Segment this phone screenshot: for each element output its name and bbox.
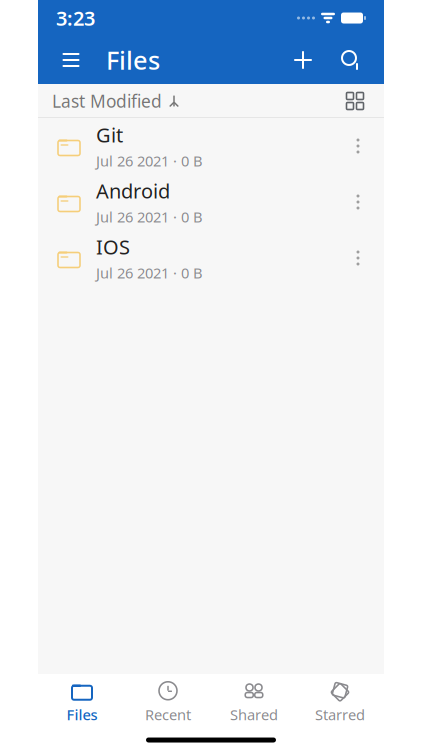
button[interactable]: Shared (211, 679, 297, 725)
staticText: Files (66, 705, 97, 724)
staticText: 3:23 (56, 5, 95, 31)
button[interactable]: Starred (297, 679, 383, 725)
button[interactable]: Git (38, 118, 384, 174)
staticText: IOS (96, 233, 130, 260)
button[interactable]: Grid view (340, 86, 370, 116)
staticText: Recent (145, 705, 191, 724)
staticText: Android (96, 177, 170, 204)
staticText: Jul 26 2021 · 0 B (96, 263, 203, 282)
button[interactable]: Last Modified (52, 81, 180, 120)
staticText: Git (96, 121, 123, 148)
button[interactable]: Recent (125, 679, 211, 725)
staticText: Jul 26 2021 · 0 B (96, 207, 203, 226)
button[interactable]: Search (332, 41, 370, 79)
button[interactable]: Files (39, 679, 125, 725)
button[interactable]: Add (284, 41, 322, 79)
staticText: Last Modified (52, 89, 162, 112)
button[interactable]: IOS (38, 230, 384, 286)
staticText: Files (106, 43, 160, 77)
button[interactable]: Android (38, 174, 384, 230)
staticText: Starred (315, 705, 365, 724)
staticText: Shared (230, 705, 278, 724)
button[interactable]: Menu (52, 41, 90, 79)
staticText: Jul 26 2021 · 0 B (96, 151, 203, 170)
